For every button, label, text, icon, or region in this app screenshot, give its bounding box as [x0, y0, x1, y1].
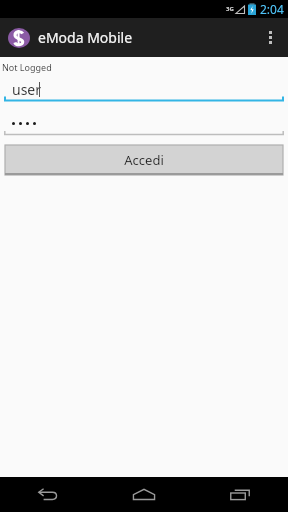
button[interactable]: Home: [96, 477, 192, 512]
staticText: 3G: [226, 5, 234, 13]
button[interactable]: Back: [0, 477, 96, 512]
button[interactable]: [4, 111, 284, 136]
button[interactable]: Recent apps: [192, 477, 288, 512]
staticText: eModa Mobile: [38, 28, 133, 47]
button[interactable]: user: [4, 76, 284, 102]
button[interactable]: More options: [253, 18, 288, 57]
staticText: user: [12, 80, 42, 99]
staticText: 2:04: [260, 1, 284, 17]
staticText: Accedi: [124, 151, 164, 169]
staticText: Not Logged: [2, 61, 52, 73]
button[interactable]: Accedi: [5, 145, 283, 175]
